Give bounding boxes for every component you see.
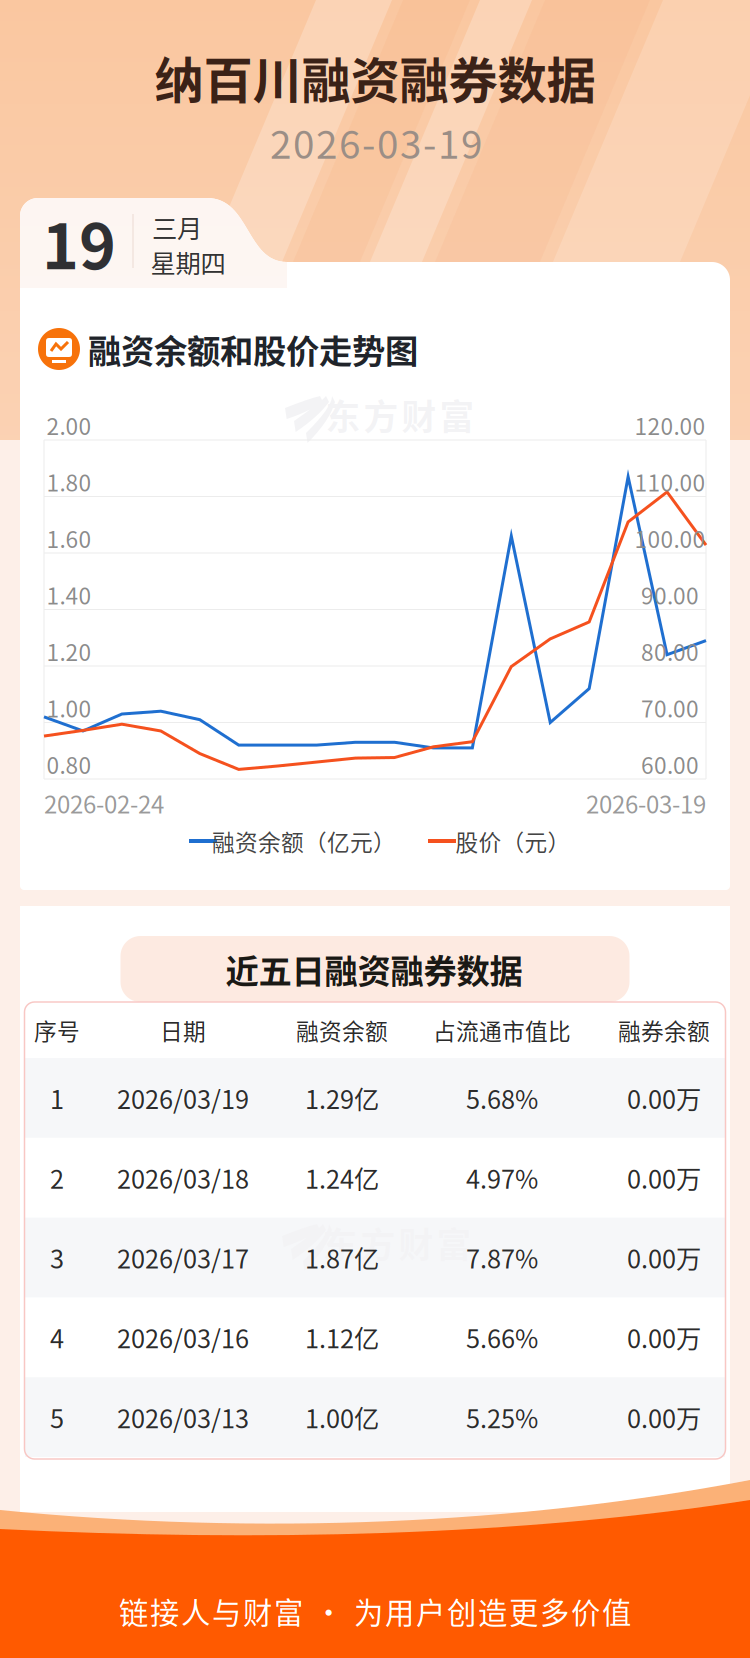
staticText: 110.00 [634, 465, 705, 498]
staticText: 纳百川融资融券数据 [154, 41, 595, 113]
staticText: 2026-03-19 [270, 114, 482, 170]
staticText: 70.00 [641, 691, 699, 724]
staticText: 1.80 [46, 465, 91, 498]
staticText: 0.00万 [627, 1159, 701, 1196]
staticText: 2026-03-19 [586, 786, 706, 820]
staticText: 0.00万 [627, 1080, 701, 1116]
staticText: 0.00万 [627, 1239, 701, 1276]
staticText: 2026/03/18 [117, 1159, 249, 1196]
staticText: 东方财富 [322, 1218, 471, 1268]
staticText: 3 [50, 1239, 64, 1276]
staticText: 日期 [160, 1014, 206, 1046]
staticText: 2026/03/16 [117, 1319, 249, 1356]
staticText: 链接人与财富 · 为用户创造更多价值 [119, 1590, 631, 1632]
staticText: 0.00万 [627, 1399, 701, 1435]
staticText: 1.00 [46, 691, 91, 724]
staticText: 1.20 [46, 635, 91, 667]
staticText: 股价（元） [455, 825, 570, 857]
staticText: 融资余额和股价走势图 [88, 325, 418, 373]
staticText: 90.00 [641, 578, 699, 611]
staticText: 7.87% [466, 1239, 538, 1276]
staticText: 5.66% [466, 1319, 538, 1356]
staticText: 5.25% [466, 1399, 538, 1435]
staticText: 0.80 [46, 748, 91, 780]
staticText: 三月 [152, 209, 202, 245]
staticText: 1.40 [46, 578, 91, 611]
staticText: 5.68% [466, 1080, 538, 1116]
staticText: 2026-02-24 [44, 786, 164, 820]
staticText: 2026/03/13 [117, 1399, 249, 1435]
staticText: 1.29亿 [305, 1080, 379, 1116]
staticText: 60.00 [641, 748, 699, 780]
staticText: 100.00 [634, 522, 705, 554]
staticText: 2 [50, 1159, 64, 1196]
staticText: 4.97% [466, 1159, 538, 1196]
staticText: 0.00万 [627, 1319, 701, 1356]
staticText: 4 [50, 1319, 64, 1356]
staticText: 1.60 [46, 522, 91, 554]
staticText: 19 [42, 197, 116, 287]
staticText: 2.00 [46, 409, 91, 441]
staticText: 占流通市值比 [433, 1014, 571, 1046]
staticText: 1.00亿 [305, 1399, 379, 1435]
staticText: 80.00 [641, 635, 699, 667]
staticText: 融资余额（亿元） [212, 825, 396, 857]
staticText: 1 [50, 1080, 64, 1116]
staticText: 近五日融资融券数据 [225, 945, 522, 993]
staticText: 5 [50, 1399, 64, 1435]
staticText: 2026/03/17 [117, 1239, 249, 1276]
staticText: 融券余额 [618, 1014, 710, 1046]
staticText: 1.12亿 [305, 1319, 379, 1356]
staticText: 2026/03/19 [117, 1080, 249, 1116]
staticText: 东方财富 [325, 390, 474, 440]
staticText: 融资余额 [296, 1014, 388, 1046]
staticText: 1.87亿 [305, 1239, 379, 1276]
staticText: 星期四 [150, 244, 225, 280]
staticText: 120.00 [634, 409, 705, 441]
staticText: 1.24亿 [305, 1159, 379, 1196]
staticText: 序号 [34, 1014, 80, 1046]
